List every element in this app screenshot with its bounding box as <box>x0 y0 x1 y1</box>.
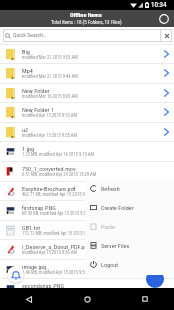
button[interactable]: Back <box>0 288 58 310</box>
button[interactable]: secondsnap.PNG <box>0 278 174 298</box>
staticText: 1.46 MB, modified Apr 15 2015 9:56 AM <box>22 270 94 275</box>
button[interactable]: Notifications <box>7 266 24 283</box>
staticText: Total items : 18 (5 Folders, 13 Files) <box>51 19 122 25</box>
staticText: 10:34 <box>151 1 167 9</box>
button[interactable]: 750_1_converted.mov <box>0 161 174 181</box>
staticText: Offline Items <box>70 11 102 18</box>
button[interactable]: Easyhire-Brochure.pdf <box>0 181 174 201</box>
button[interactable]: Quick Search.. <box>3 29 172 42</box>
staticText: Paste <box>101 223 115 230</box>
button[interactable]: Home <box>58 288 116 310</box>
staticText: 68.30 KB, modified Apr 15 2015 9:56 AM <box>22 211 96 216</box>
staticText: Create Folder <box>101 204 134 211</box>
staticText: modified Mar 21 2015 9:53 AM <box>22 55 78 60</box>
staticText: firstsnap.PNG <box>22 204 56 211</box>
button[interactable]: Logout <box>85 255 174 274</box>
button[interactable]: Big <box>0 44 174 64</box>
staticText: u2 <box>22 126 29 133</box>
button[interactable]: image.jpg <box>0 259 174 279</box>
button[interactable]: New Folder 1 <box>0 102 174 122</box>
staticText: New Folder <box>22 87 50 94</box>
button[interactable]: New Folder <box>0 83 174 103</box>
staticText: New Folder 1 <box>22 106 54 113</box>
button[interactable]: Mp4 <box>0 63 174 83</box>
button[interactable]: Clear <box>161 29 172 42</box>
staticText: 6.51 MB, modified Apr 24 2015 13:29 AM <box>22 172 97 177</box>
button[interactable]: 1.jpg <box>0 141 174 161</box>
staticText: modified Apr 15 2015 9:56 AM <box>22 250 77 255</box>
button[interactable]: Create Folder <box>85 198 174 217</box>
button[interactable]: Refresh <box>85 179 174 198</box>
staticText: 750_1_converted.mov <box>22 165 76 172</box>
staticText: Logout <box>101 261 119 268</box>
button[interactable]: I_Deserve_a_Donut_PDF.pdf <box>0 239 174 259</box>
staticText: modified Apr 15 2015 9:55 AM <box>22 133 77 138</box>
staticText: Easyhire-Brochure.pdf <box>22 185 76 192</box>
staticText: I_Deserve_a_Donut_PDF.pdf <box>22 243 90 250</box>
staticText: modified Apr 15 2015 9:55 AM <box>22 113 77 118</box>
staticText: Server Files <box>101 242 130 249</box>
button[interactable]: GB1.txt <box>0 220 174 240</box>
button[interactable]: Upload <box>146 270 164 288</box>
staticText: modified Mar 21 2015 9:44 AM <box>22 74 78 79</box>
staticText: image.jpg <box>22 263 47 270</box>
staticText: Big <box>22 48 30 55</box>
button[interactable]: Account <box>157 12 170 25</box>
staticText: Refresh <box>101 185 120 192</box>
button[interactable]: firstsnap.PNG <box>0 200 174 220</box>
staticText: GB1.txt <box>22 224 41 231</box>
staticText: modified Mar 16 2015 8:09 AM <box>22 94 78 99</box>
staticText: Mp4 <box>22 67 33 74</box>
staticText: Quick Search.. <box>13 32 46 39</box>
button[interactable]: u2 <box>0 122 174 142</box>
staticText: 172.12 MB, modified Apr 15 2015 9:56 AM <box>22 231 99 236</box>
button[interactable]: Paste <box>85 217 174 236</box>
staticText: 462.77 KB, modified Apr 15 2015 9:56 AM <box>22 192 98 197</box>
staticText: 1.jpg <box>22 145 35 152</box>
staticText: 1.23 MB, modified Apr 16 2015 9:13 AM <box>22 152 94 157</box>
staticText: secondsnap.PNG <box>22 282 65 289</box>
button[interactable]: Server Files <box>85 236 174 255</box>
button[interactable]: Recents <box>116 288 174 310</box>
